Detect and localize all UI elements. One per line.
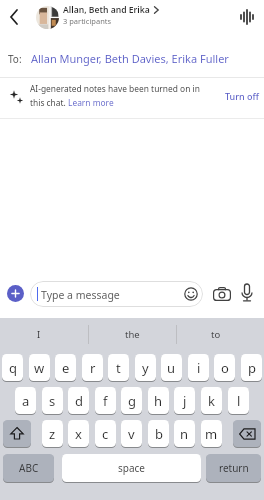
staticText: e [62, 359, 70, 377]
button[interactable]: g [121, 387, 142, 414]
staticText: l [237, 392, 241, 410]
button[interactable] [237, 8, 257, 26]
button[interactable]: x [68, 420, 89, 447]
staticText: g [128, 392, 136, 410]
button[interactable]: f [95, 387, 116, 414]
button[interactable] [213, 287, 231, 301]
staticText: y [142, 359, 149, 377]
button[interactable]: p [241, 354, 262, 381]
staticText: I [37, 328, 41, 341]
button[interactable]: c [95, 420, 116, 447]
button[interactable]: j [174, 387, 195, 414]
button[interactable] [7, 285, 24, 302]
staticText: d [75, 392, 83, 410]
button[interactable]: to [172, 318, 260, 350]
staticText: z [49, 425, 56, 443]
button[interactable]: l [228, 387, 249, 414]
button[interactable]: m [201, 420, 222, 447]
staticText: u [167, 359, 176, 377]
staticText: Allan Munger, Beth Davies, Erika Fuller [31, 51, 229, 66]
button[interactable]: return [206, 454, 261, 482]
staticText: n [180, 425, 189, 443]
staticText: r [90, 359, 96, 377]
button[interactable]: e [55, 354, 76, 381]
staticText: the [125, 328, 140, 341]
staticText: space [118, 461, 145, 475]
button[interactable]: h [148, 387, 169, 414]
button[interactable] [3, 420, 31, 447]
button[interactable] [183, 286, 199, 302]
staticText: this chat. [30, 97, 68, 108]
button[interactable]: Type a message [30, 281, 203, 307]
staticText: s [49, 392, 56, 410]
staticText: Learn more [68, 97, 114, 108]
staticText: q [9, 359, 17, 377]
button[interactable]: b [148, 420, 169, 447]
staticText: a [22, 392, 30, 410]
staticText: Type a message [41, 288, 120, 302]
staticText: Allan, Beth and Erika [63, 4, 150, 16]
staticText: to [211, 328, 221, 341]
button[interactable]: k [201, 387, 222, 414]
staticText: Turn off [225, 90, 259, 102]
button[interactable]: t [108, 354, 129, 381]
button[interactable]: space [62, 454, 201, 482]
button[interactable]: I [0, 318, 83, 350]
button[interactable]: v [121, 420, 142, 447]
staticText: ABC [19, 461, 39, 475]
button[interactable]: n [174, 420, 195, 447]
button[interactable]: a [15, 387, 36, 414]
button[interactable]: o [214, 354, 235, 381]
staticText: f [103, 392, 108, 410]
button[interactable]: d [68, 387, 89, 414]
staticText: return [219, 461, 249, 475]
button[interactable]: To: [0, 40, 264, 77]
staticText: 3 participants [63, 16, 112, 26]
button[interactable]: i [188, 354, 209, 381]
button[interactable] [8, 8, 20, 26]
button[interactable]: Allan, Beth and Erika [63, 4, 159, 16]
staticText: p [248, 359, 256, 377]
staticText: i [197, 359, 201, 377]
staticText: t [116, 359, 121, 377]
button[interactable]: y [135, 354, 156, 381]
staticText: v [128, 425, 135, 443]
staticText: To: [8, 52, 22, 66]
button[interactable]: Turn off [225, 90, 259, 102]
button[interactable] [233, 420, 261, 447]
button[interactable]: r [82, 354, 103, 381]
staticText: b [155, 425, 163, 443]
staticText: x [75, 425, 82, 443]
staticText: c [102, 425, 109, 443]
button[interactable]: ABC [3, 454, 54, 482]
button[interactable]: s [42, 387, 63, 414]
button[interactable]: Learn more [68, 97, 114, 108]
staticText: AI-generated notes have been turned on i… [30, 83, 200, 94]
button[interactable] [240, 283, 254, 304]
button[interactable]: the [88, 318, 176, 350]
button[interactable]: q [2, 354, 23, 381]
staticText: m [205, 425, 218, 443]
staticText: w [34, 359, 45, 377]
button[interactable]: u [161, 354, 182, 381]
button[interactable] [36, 6, 59, 29]
staticText: j [183, 392, 187, 410]
staticText: h [154, 392, 163, 410]
button[interactable]: z [42, 420, 63, 447]
staticText: k [208, 392, 215, 410]
staticText: o [221, 359, 229, 377]
button[interactable]: w [29, 354, 50, 381]
